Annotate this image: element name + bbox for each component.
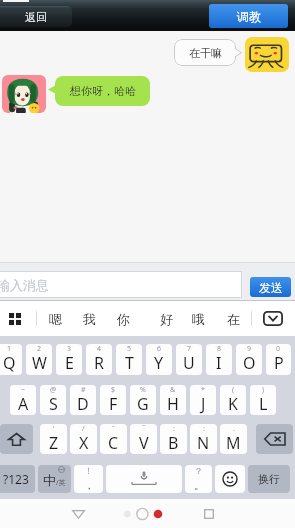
- staticText: P: [274, 352, 284, 374]
- button[interactable]: ): [250, 385, 276, 415]
- staticText: ˇ: [112, 424, 115, 434]
- staticText: Y: [154, 352, 164, 374]
- button[interactable]: 哦: [184, 301, 212, 336]
- button[interactable]: Emoji: [215, 465, 245, 493]
- staticText: 换行: [258, 472, 280, 486]
- staticText: 6: [157, 344, 162, 354]
- button[interactable]: 4: [86, 344, 112, 375]
- button[interactable]: 想你呀，哈哈: [55, 76, 150, 106]
- button[interactable]: Back: [55, 501, 102, 527]
- button[interactable]: Space: [106, 465, 182, 493]
- staticText: (: [232, 385, 235, 395]
- button[interactable]: &: [160, 385, 186, 415]
- staticText: W: [32, 352, 47, 374]
- staticText: B: [168, 432, 179, 454]
- button[interactable]: Avatar: [2, 75, 46, 113]
- staticText: G: [137, 393, 149, 415]
- staticText: 想你呀，哈哈: [70, 84, 136, 98]
- staticText: H: [167, 393, 179, 415]
- button[interactable]: 你: [109, 301, 137, 336]
- staticText: 7: [187, 344, 192, 354]
- staticText: 3: [67, 344, 72, 354]
- staticText: X: [79, 432, 89, 454]
- button[interactable]: 换行: [248, 465, 290, 493]
- staticText: D: [77, 393, 89, 415]
- button[interactable]: ¯: [130, 424, 157, 454]
- staticText: 9: [247, 344, 252, 354]
- button[interactable]: ?123: [0, 465, 35, 493]
- button[interactable]: (: [220, 385, 246, 415]
- staticText: ，: [84, 479, 94, 492]
- staticText: %: [140, 385, 146, 395]
- button[interactable]: 输入消息: [0, 271, 242, 298]
- staticText: Z: [49, 432, 59, 454]
- staticText: 嗯: [49, 311, 62, 327]
- button[interactable]: .: [220, 424, 247, 454]
- button[interactable]: ~: [10, 385, 36, 415]
- staticText: M: [226, 432, 241, 454]
- button[interactable]: 好: [152, 301, 180, 336]
- button[interactable]: #: [70, 385, 96, 415]
- button[interactable]: 嗯: [41, 301, 69, 336]
- button[interactable]: *: [190, 385, 216, 415]
- button[interactable]: Avatar: [245, 37, 289, 72]
- button[interactable]: :: [190, 424, 217, 454]
- staticText: T: [125, 352, 134, 374]
- staticText: ': [53, 424, 55, 434]
- button[interactable]: 2: [26, 344, 52, 375]
- staticText: 5: [127, 344, 132, 354]
- staticText: A: [18, 393, 29, 415]
- button[interactable]: 发送: [250, 277, 291, 297]
- button[interactable]: 调教: [209, 4, 288, 28]
- button[interactable]: 5: [116, 344, 142, 375]
- staticText: V: [139, 432, 149, 454]
- button[interactable]: ？: [185, 465, 212, 493]
- button[interactable]: $: [100, 385, 126, 415]
- button[interactable]: Backspace: [256, 424, 293, 454]
- staticText: E: [65, 352, 74, 374]
- button[interactable]: ': [40, 424, 67, 454]
- staticText: R: [94, 352, 104, 374]
- button[interactable]: Symbols: [1, 301, 29, 336]
- button[interactable]: 9: [236, 344, 262, 375]
- button[interactable]: :: [160, 424, 187, 454]
- button[interactable]: Shift: [0, 424, 33, 454]
- staticText: .: [233, 424, 235, 434]
- button[interactable]: Hide keyboard: [256, 301, 289, 336]
- staticText: K: [228, 393, 238, 415]
- staticText: U: [183, 352, 195, 374]
- button[interactable]: ！: [74, 465, 103, 493]
- button[interactable]: Switch language: [38, 465, 71, 493]
- button[interactable]: /: [70, 424, 97, 454]
- button[interactable]: 6: [146, 344, 172, 375]
- staticText: *: [201, 385, 205, 395]
- staticText: N: [197, 432, 210, 454]
- staticText: #: [81, 385, 86, 395]
- button[interactable]: ˇ: [100, 424, 127, 454]
- staticText: C: [108, 432, 119, 454]
- staticText: J: [201, 393, 206, 415]
- button[interactable]: 0: [266, 344, 291, 375]
- button[interactable]: %: [130, 385, 156, 415]
- button[interactable]: 我: [75, 301, 103, 336]
- staticText: $: [111, 385, 116, 395]
- staticText: &: [170, 385, 176, 395]
- button[interactable]: 在干嘛: [174, 39, 236, 66]
- button[interactable]: 在: [219, 301, 247, 336]
- button[interactable]: 返回: [0, 6, 72, 27]
- staticText: 返回: [25, 10, 47, 24]
- button[interactable]: Recents: [186, 501, 232, 527]
- staticText: 2: [37, 344, 42, 354]
- staticText: 1: [7, 344, 12, 354]
- button[interactable]: Home: [118, 501, 168, 527]
- staticText: 哦: [192, 311, 205, 327]
- staticText: 输入消息: [0, 277, 49, 293]
- button[interactable]: 8: [206, 344, 232, 375]
- staticText: 调教: [237, 9, 261, 24]
- button[interactable]: 3: [56, 344, 82, 375]
- staticText: 好: [160, 311, 173, 327]
- button[interactable]: 7: [176, 344, 202, 375]
- staticText: O: [243, 352, 256, 374]
- button[interactable]: 1: [0, 344, 22, 375]
- button[interactable]: @: [40, 385, 66, 415]
